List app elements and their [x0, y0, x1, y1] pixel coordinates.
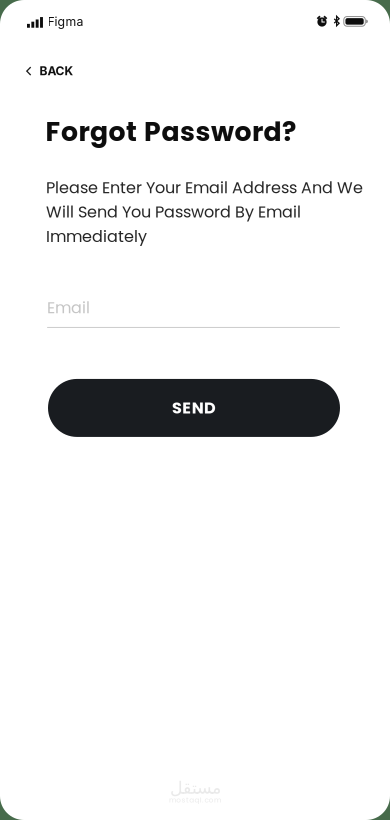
staticText: Figma	[47, 14, 83, 29]
staticText: BACK	[39, 64, 73, 78]
button[interactable]: SEND	[48, 379, 340, 437]
staticText: SEND	[172, 397, 216, 419]
staticText: Please Enter Your Email Address And We W…	[46, 176, 363, 247]
staticText: Forgot Password?	[45, 113, 296, 150]
staticText: Email	[47, 296, 90, 319]
staticText: mostaql.com	[169, 795, 221, 805]
button[interactable]: BACK	[0, 57, 87, 85]
staticText: مستقل	[169, 778, 220, 798]
